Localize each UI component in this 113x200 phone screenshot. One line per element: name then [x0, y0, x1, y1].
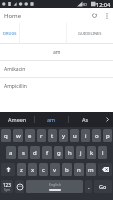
button[interactable]: z — [17, 163, 26, 176]
button[interactable]: r — [37, 129, 46, 142]
button[interactable]: k — [87, 146, 96, 159]
staticText: l — [102, 149, 104, 157]
button[interactable]: m — [86, 163, 96, 176]
staticText: s — [22, 149, 25, 157]
button[interactable]: . — [85, 180, 92, 193]
staticText: w — [16, 132, 21, 140]
button[interactable]: More options — [101, 8, 113, 23]
staticText: u — [73, 132, 77, 140]
staticText: DRUGS — [3, 31, 17, 36]
button[interactable]: l — [98, 146, 107, 159]
button[interactable]: Shift — [1, 163, 15, 176]
staticText: b — [65, 166, 69, 174]
button[interactable]: w — [13, 129, 23, 142]
staticText: k — [90, 149, 94, 157]
staticText: . — [88, 183, 90, 191]
staticText: a — [9, 149, 13, 157]
staticText: p — [106, 132, 110, 140]
staticText: z — [20, 166, 23, 174]
staticText: am — [53, 49, 61, 56]
staticText: m — [88, 166, 94, 174]
button[interactable]: Space — [26, 180, 83, 193]
staticText: t — [51, 132, 54, 140]
button[interactable]: Backspace — [98, 163, 112, 176]
button[interactable]: e — [25, 129, 35, 142]
staticText: o — [95, 132, 99, 140]
button[interactable]: n — [74, 163, 84, 176]
staticText: HD — [81, 2, 87, 7]
button[interactable]: Emoji — [15, 180, 24, 193]
staticText: h — [68, 149, 72, 157]
button[interactable]: Refresh — [87, 8, 101, 23]
button[interactable]: Ampicillin — [0, 78, 113, 94]
staticText: q — [4, 132, 8, 140]
staticText: e — [28, 132, 32, 140]
button[interactable]: q — [1, 129, 11, 142]
button[interactable]: v — [50, 163, 60, 176]
button[interactable]: f — [42, 146, 52, 159]
staticText: d — [33, 149, 37, 157]
button[interactable]: As — [69, 112, 102, 127]
staticText: am — [47, 116, 56, 123]
staticText: r — [40, 132, 43, 140]
button[interactable]: p — [103, 129, 112, 142]
staticText: Home — [4, 12, 22, 20]
staticText: 12:04 — [96, 1, 111, 8]
button[interactable]: t — [48, 129, 57, 142]
button[interactable]: d — [30, 146, 40, 159]
button[interactable]: 123 — [1, 180, 13, 193]
staticText: v — [53, 166, 57, 174]
button[interactable]: a — [6, 146, 16, 159]
button[interactable]: s — [18, 146, 28, 159]
button[interactable]: b — [62, 163, 72, 176]
staticText: i — [85, 132, 87, 140]
staticText: y — [62, 132, 66, 140]
staticText: Amikacin — [4, 66, 26, 73]
staticText: Sym — [4, 188, 10, 192]
button[interactable]: u — [70, 129, 79, 142]
button[interactable]: h — [65, 146, 74, 159]
staticText: Ampicillin — [4, 83, 27, 90]
button[interactable]: GUIDELINES — [67, 23, 113, 43]
button[interactable]: Amikacin — [0, 61, 113, 77]
staticText: 123 — [3, 182, 11, 188]
button[interactable]: o — [92, 129, 101, 142]
staticText: f — [46, 149, 49, 157]
button[interactable]: Go — [94, 180, 112, 193]
button[interactable]: y — [59, 129, 68, 142]
staticText: c — [42, 166, 45, 174]
staticText: GUIDELINES — [78, 31, 102, 36]
button[interactable]: am — [0, 44, 113, 60]
staticText: Ameen — [8, 116, 27, 123]
staticText: English — [49, 182, 61, 187]
staticText: x — [31, 166, 35, 174]
button[interactable]: c — [39, 163, 48, 176]
button[interactable]: x — [28, 163, 37, 176]
button[interactable]: am — [35, 112, 68, 127]
staticText: n — [77, 166, 81, 174]
button[interactable]: DRUGS — [0, 23, 19, 43]
button[interactable]: j — [76, 146, 85, 159]
button[interactable]: Ameen — [0, 112, 34, 127]
staticText: g — [57, 149, 61, 157]
button[interactable]: g — [54, 146, 63, 159]
staticText: j — [80, 149, 82, 157]
button[interactable]: More suggestions — [102, 112, 113, 127]
button[interactable]: i — [81, 129, 90, 142]
staticText: As — [82, 116, 89, 123]
staticText: Go — [99, 183, 107, 190]
